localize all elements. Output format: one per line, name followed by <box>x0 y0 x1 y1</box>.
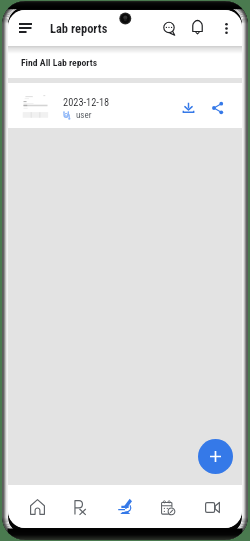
button[interactable]: Notifications <box>185 17 207 39</box>
button[interactable]: Video consult <box>190 485 234 528</box>
staticText: 2023-12-18 <box>63 96 110 108</box>
button[interactable]: Add lab report <box>198 439 233 474</box>
button[interactable]: More options <box>215 17 237 39</box>
button[interactable]: Lab reports <box>102 485 146 528</box>
button[interactable]: Download report <box>178 96 198 116</box>
button[interactable]: Prescriptions <box>59 485 102 528</box>
button[interactable]: Appointments <box>146 485 190 528</box>
staticText: Lab reports <box>50 21 108 36</box>
button[interactable]: Open navigation menu <box>13 16 37 40</box>
button[interactable]: Home <box>16 485 59 528</box>
button[interactable]: 2023-12-18 <box>8 83 242 128</box>
staticText: user <box>76 110 92 121</box>
staticText: Find All Lab reports <box>21 57 98 68</box>
button[interactable]: Share report <box>207 96 227 116</box>
button[interactable]: Messages <box>157 17 179 39</box>
